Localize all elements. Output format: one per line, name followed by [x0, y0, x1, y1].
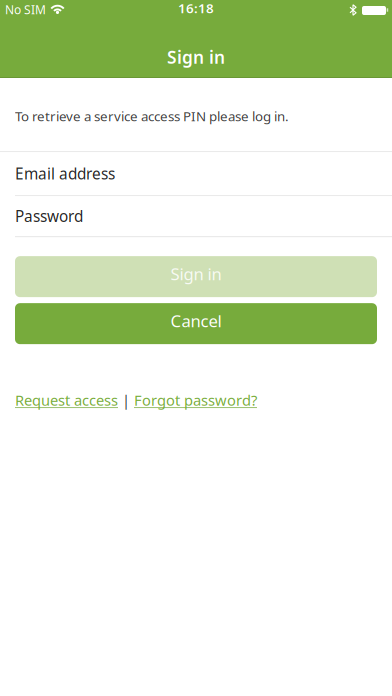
- staticText: Cancel: [170, 309, 221, 332]
- button[interactable]: Forgot password?: [134, 390, 257, 410]
- staticText: Sign in: [167, 45, 225, 69]
- staticText: Sign in: [170, 262, 221, 285]
- button[interactable]: Password: [0, 196, 392, 236]
- button[interactable]: Email address: [0, 152, 392, 195]
- staticText: Request access: [15, 390, 118, 410]
- staticText: To retrieve a service access PIN please …: [15, 107, 289, 125]
- button[interactable]: Cancel: [0, 303, 392, 344]
- button[interactable]: Sign in: [0, 256, 392, 297]
- staticText: No SIM: [5, 1, 46, 18]
- button[interactable]: Request access: [15, 390, 118, 410]
- staticText: Forgot password?: [134, 390, 257, 410]
- staticText: Email address: [15, 163, 115, 184]
- staticText: |: [118, 390, 134, 410]
- staticText: 16:18: [178, 0, 214, 17]
- staticText: Password: [15, 206, 83, 227]
